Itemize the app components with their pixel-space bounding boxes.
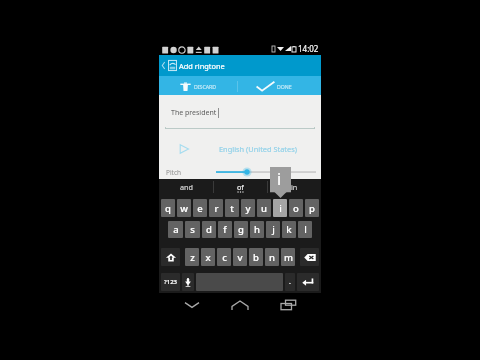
staticText: r: [214, 202, 219, 215]
button[interactable]: Pitch: [216, 166, 316, 178]
button[interactable]: and: [159, 179, 213, 195]
button[interactable]: r: [209, 199, 223, 217]
button[interactable]: Home: [225, 295, 255, 315]
button[interactable]: o: [289, 199, 303, 217]
staticText: w: [180, 202, 188, 215]
button[interactable]: Shift: [161, 248, 180, 266]
staticText: The president: [171, 108, 217, 118]
staticText: DISCARD: [194, 83, 217, 90]
staticText: s: [190, 223, 195, 236]
button[interactable]: ?123: [161, 273, 180, 291]
button[interactable]: e: [193, 199, 207, 217]
staticText: 14:02: [298, 43, 319, 54]
button[interactable]: z: [185, 248, 199, 266]
staticText: m: [284, 251, 293, 264]
button[interactable]: Recent apps: [273, 295, 303, 315]
staticText: j: [272, 223, 275, 236]
staticText: q: [165, 202, 171, 215]
staticText: v: [237, 251, 243, 264]
staticText: i: [279, 202, 282, 215]
staticText: x: [205, 251, 211, 264]
button[interactable]: The president: [171, 108, 219, 118]
button[interactable]: .: [285, 273, 295, 291]
staticText: in: [291, 182, 298, 192]
button[interactable]: DISCARD: [159, 76, 237, 96]
button[interactable]: j: [266, 221, 280, 238]
button[interactable]: t: [225, 199, 239, 217]
button[interactable]: s: [185, 221, 200, 238]
button[interactable]: h: [250, 221, 264, 238]
staticText: t: [230, 202, 234, 215]
button[interactable]: u: [257, 199, 271, 217]
staticText: English (United States): [219, 144, 297, 154]
staticText: g: [238, 223, 244, 236]
button[interactable]: c: [217, 248, 231, 266]
button[interactable]: w: [177, 199, 191, 217]
button[interactable]: v: [233, 248, 247, 266]
button[interactable]: Play: [172, 140, 196, 158]
staticText: z: [190, 251, 195, 264]
button[interactable]: q: [161, 199, 175, 217]
button[interactable]: k: [282, 221, 296, 238]
staticText: n: [269, 251, 275, 264]
staticText: ?123: [164, 278, 177, 286]
staticText: of: [237, 182, 244, 192]
staticText: and: [180, 182, 193, 192]
button[interactable]: i: [273, 199, 287, 217]
staticText: f: [223, 223, 227, 236]
staticText: b: [253, 251, 259, 264]
button[interactable]: a: [168, 221, 183, 238]
staticText: Add ringtone: [179, 61, 225, 71]
button[interactable]: English (United States): [209, 140, 307, 158]
button[interactable]: Delete: [300, 248, 319, 266]
button[interactable]: g: [234, 221, 248, 238]
button[interactable]: Enter: [297, 273, 319, 291]
staticText: p: [309, 202, 315, 215]
staticText: i: [277, 168, 282, 190]
staticText: .: [289, 277, 291, 287]
button[interactable]: Back: [177, 295, 207, 315]
button[interactable]: l: [298, 221, 312, 238]
staticText: k: [286, 223, 292, 236]
staticText: h: [254, 223, 260, 236]
button[interactable]: b: [249, 248, 263, 266]
staticText: l: [304, 223, 307, 236]
button[interactable]: m: [281, 248, 295, 266]
staticText: a: [173, 223, 179, 236]
button[interactable]: of: [213, 179, 267, 195]
staticText: u: [261, 202, 267, 215]
staticText: y: [245, 202, 251, 215]
staticText: c: [222, 251, 227, 264]
button[interactable]: n: [265, 248, 279, 266]
button[interactable]: DONE: [238, 76, 309, 96]
staticText: o: [293, 202, 299, 215]
staticText: DONE: [277, 83, 292, 90]
staticText: d: [206, 223, 212, 236]
button[interactable]: y: [241, 199, 255, 217]
button[interactable]: Voice input: [182, 273, 194, 291]
button[interactable]: f: [218, 221, 232, 238]
button[interactable]: Navigate up: [159, 55, 167, 76]
button[interactable]: d: [202, 221, 216, 238]
button[interactable]: p: [305, 199, 319, 217]
staticText: Pitch: [166, 168, 182, 177]
button[interactable]: x: [201, 248, 215, 266]
button[interactable]: in: [267, 179, 321, 195]
staticText: e: [197, 202, 203, 215]
